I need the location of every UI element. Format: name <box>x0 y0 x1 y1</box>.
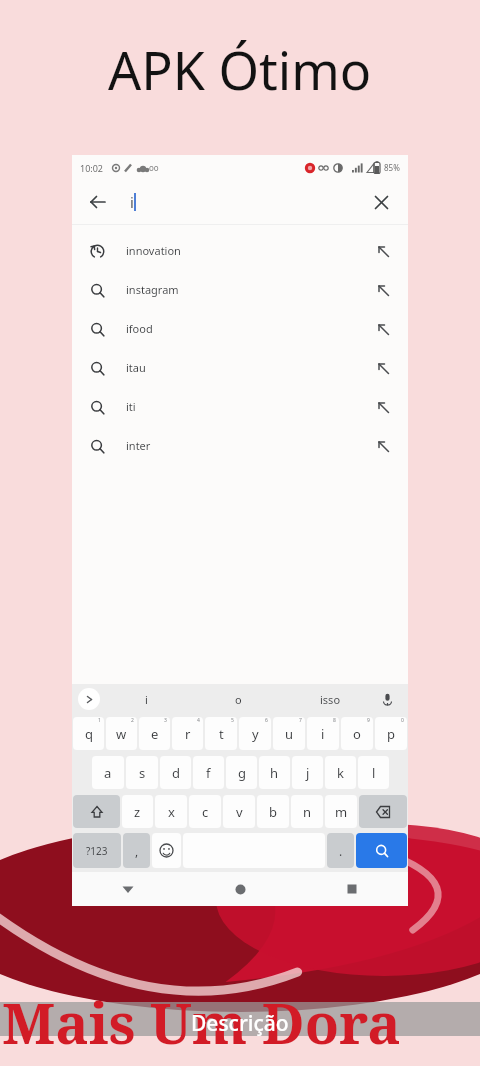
button[interactable]: c <box>189 795 221 828</box>
button[interactable]: Recent apps <box>296 872 408 906</box>
staticText: p <box>387 725 395 743</box>
button[interactable]: innovation <box>72 231 408 270</box>
staticText: s <box>139 764 146 782</box>
staticText: o <box>235 692 242 707</box>
staticText: Descrição <box>191 1009 289 1038</box>
button[interactable]: Home <box>184 872 296 906</box>
staticText: c <box>202 803 209 821</box>
button[interactable]: inter <box>72 426 408 465</box>
staticText: 9 <box>367 717 370 724</box>
button[interactable]: iti <box>72 387 408 426</box>
staticText: itau <box>126 360 146 375</box>
staticText: a <box>104 764 112 782</box>
staticText: n <box>303 803 312 821</box>
button[interactable]: Clear search <box>366 187 396 217</box>
button[interactable]: instagram <box>72 270 408 309</box>
other: Insert instagram <box>372 279 394 301</box>
button[interactable]: Back <box>72 872 184 906</box>
button[interactable]: isso <box>284 692 376 707</box>
staticText: b <box>269 803 277 821</box>
staticText: isso <box>320 692 341 707</box>
button[interactable]: 9 <box>341 717 373 750</box>
staticText: 4 <box>197 717 200 724</box>
button[interactable]: a <box>92 756 124 789</box>
staticText: i <box>130 192 134 212</box>
staticText: r <box>185 725 191 743</box>
staticText: h <box>270 764 279 782</box>
button[interactable]: g <box>226 756 257 789</box>
staticText: oo <box>149 162 159 173</box>
staticText: k <box>337 764 344 782</box>
button[interactable]: 4 <box>172 717 203 750</box>
button[interactable]: d <box>160 756 191 789</box>
staticText: o <box>353 725 361 743</box>
other: Insert itau <box>372 357 394 379</box>
staticText: 5 <box>231 717 234 724</box>
button[interactable]: j <box>292 756 323 789</box>
button[interactable]: h <box>259 756 290 789</box>
button[interactable]: Shift <box>73 795 120 828</box>
button[interactable]: 5 <box>205 717 237 750</box>
button[interactable]: 3 <box>139 717 170 750</box>
staticText: i <box>321 725 325 743</box>
other: Insert inter <box>372 435 394 457</box>
button[interactable]: 6 <box>239 717 271 750</box>
button[interactable]: 7 <box>273 717 305 750</box>
button[interactable]: , <box>123 833 150 868</box>
button[interactable]: ifood <box>72 309 408 348</box>
staticText: d <box>172 764 180 782</box>
staticText: w <box>116 725 127 743</box>
staticText: i <box>145 692 148 707</box>
button[interactable]: n <box>291 795 323 828</box>
button[interactable]: Back <box>72 180 408 224</box>
other: Insert innovation <box>372 240 394 262</box>
button[interactable]: k <box>325 756 356 789</box>
staticText: x <box>168 803 175 821</box>
staticText: e <box>151 725 159 743</box>
button[interactable]: itau <box>72 348 408 387</box>
button[interactable]: b <box>257 795 289 828</box>
button[interactable]: Search <box>356 833 407 868</box>
staticText: 0 <box>401 717 404 724</box>
staticText: q <box>85 725 93 743</box>
staticText: iti <box>126 399 136 414</box>
staticText: 85% <box>384 162 400 173</box>
other: Insert ifood <box>372 318 394 340</box>
button[interactable]: 1 <box>73 717 104 750</box>
staticText: Mais Um Dora <box>2 984 401 1060</box>
staticText: t <box>219 725 224 743</box>
button[interactable]: m <box>325 795 357 828</box>
staticText: , <box>135 843 139 859</box>
button[interactable]: More suggestions <box>78 688 100 710</box>
staticText: 3 <box>164 717 167 724</box>
staticText: u <box>285 725 294 743</box>
staticText: ifood <box>126 321 153 336</box>
button[interactable]: s <box>126 756 158 789</box>
button[interactable]: Voice input <box>376 688 398 710</box>
button[interactable]: Back <box>84 188 112 216</box>
staticText: y <box>252 725 259 743</box>
button[interactable]: o <box>192 692 284 707</box>
button[interactable]: z <box>122 795 153 828</box>
staticText: z <box>134 803 141 821</box>
button[interactable]: ?123 <box>73 833 121 868</box>
button[interactable]: . <box>327 833 354 868</box>
button[interactable]: x <box>155 795 187 828</box>
staticText: g <box>238 764 246 782</box>
button[interactable]: Emoji <box>152 833 181 868</box>
staticText: instagram <box>126 282 179 297</box>
staticText: . <box>339 843 343 859</box>
staticText: 2 <box>131 717 134 724</box>
button[interactable]: i <box>100 692 192 707</box>
button[interactable]: f <box>193 756 224 789</box>
button[interactable]: v <box>223 795 255 828</box>
button[interactable]: 8 <box>307 717 339 750</box>
button[interactable]: l <box>358 756 389 789</box>
button[interactable]: 0 <box>375 717 407 750</box>
button[interactable]: Backspace <box>359 795 407 828</box>
button[interactable]: 2 <box>106 717 137 750</box>
staticText: ?123 <box>86 844 108 858</box>
staticText: v <box>236 803 243 821</box>
staticText: m <box>335 803 348 821</box>
